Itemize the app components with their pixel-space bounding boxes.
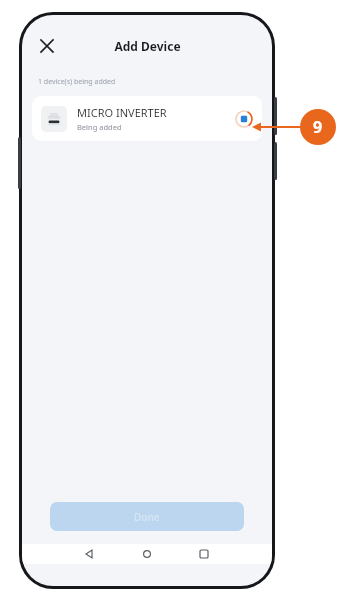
staticText: 1 device(s) being added [38,77,116,87]
button[interactable]: MICRO INVERTER [32,96,262,141]
staticText: Add Device [114,38,181,54]
staticText: 9 [313,116,323,138]
staticText: Being added [77,122,122,132]
button[interactable]: Home [118,544,175,564]
button[interactable]: Recents [175,544,232,564]
staticText: Done [134,510,160,524]
staticText: MICRO INVERTER [77,105,167,120]
button[interactable]: Done [50,502,244,531]
button[interactable]: Adding in progress [235,110,253,128]
button[interactable]: Back [62,544,118,564]
button[interactable]: 9 [300,109,336,145]
button[interactable]: Close [32,31,62,61]
